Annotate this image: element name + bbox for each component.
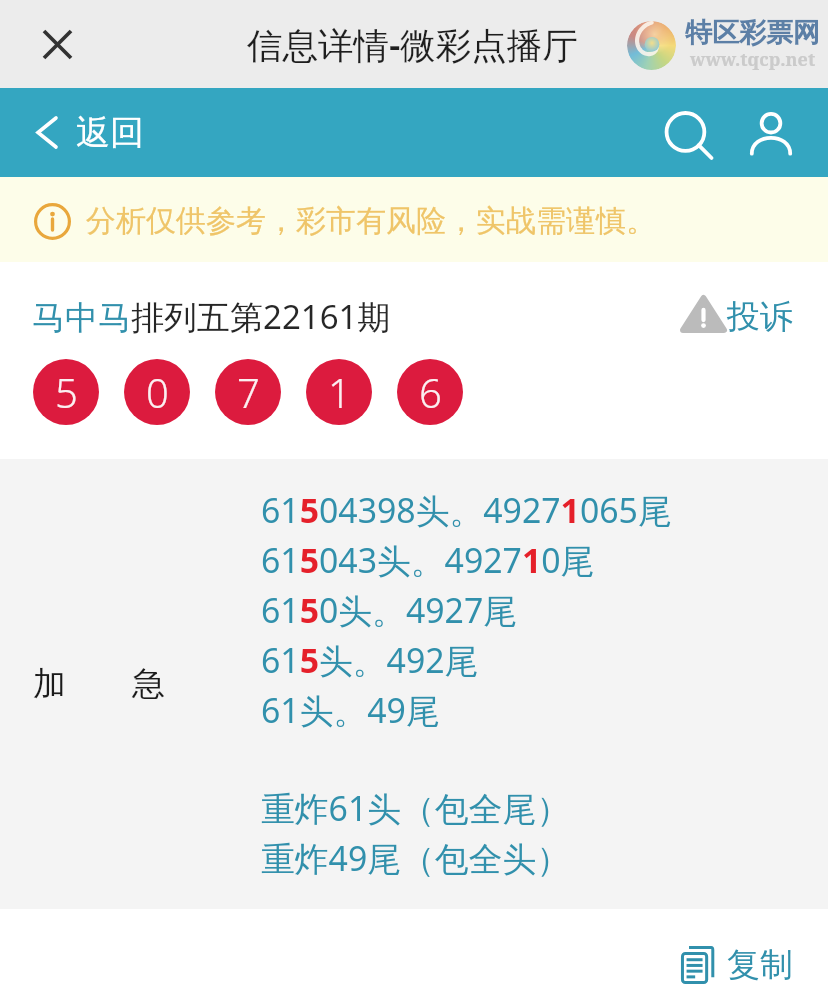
button[interactable]: 1	[306, 359, 372, 425]
staticText: 重炸61头（包全尾）	[261, 785, 571, 831]
staticText: 5	[55, 365, 78, 419]
staticText: 加	[33, 663, 66, 705]
button[interactable]: Search	[655, 102, 717, 164]
staticText: 61504398头。49271065尾	[261, 487, 672, 533]
button[interactable]: 复制	[674, 937, 799, 993]
staticText: 马中马排列五第22161期	[32, 294, 391, 339]
staticText: www.tqcp.net	[690, 47, 816, 72]
staticText: 复制	[727, 944, 793, 986]
button[interactable]: 返回	[18, 99, 162, 166]
staticText: 投诉	[727, 296, 793, 338]
staticText: 0	[146, 365, 169, 419]
staticText: 重炸49尾（包全头）	[261, 835, 571, 881]
staticText: 61头。49尾	[261, 687, 440, 733]
button[interactable]: 5	[33, 359, 99, 425]
staticText: 特区彩票网	[685, 16, 820, 50]
button[interactable]: 0	[124, 359, 190, 425]
staticText: 信息详情-微彩点播厅	[247, 20, 578, 68]
staticText: 返回	[76, 111, 144, 154]
staticText: 615头。492尾	[261, 637, 479, 683]
staticText: 急	[132, 663, 165, 705]
button[interactable]: 投诉	[682, 296, 793, 338]
button[interactable]: Account	[740, 102, 802, 164]
staticText: 615043头。492710尾	[261, 537, 595, 583]
staticText: 6	[419, 365, 442, 419]
staticText: 1	[328, 365, 351, 419]
button[interactable]: 6	[397, 359, 463, 425]
staticText: 7	[237, 365, 260, 419]
staticText: 分析仅供参考，彩市有风险，实战需谨慎。	[86, 202, 656, 240]
button[interactable]: 7	[215, 359, 281, 425]
staticText: 6150头。4927尾	[261, 587, 518, 633]
button[interactable]: Close	[27, 14, 87, 74]
